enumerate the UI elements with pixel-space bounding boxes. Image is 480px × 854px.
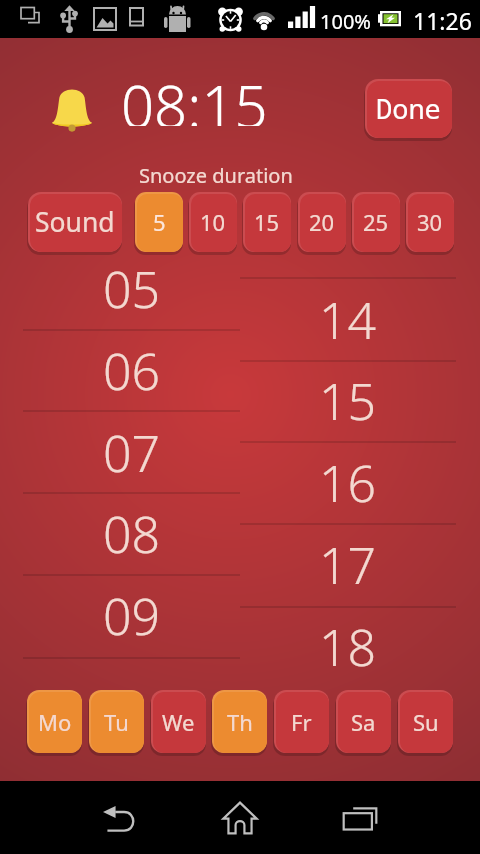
button[interactable]: 17 (240, 524, 456, 606)
staticText: Su (413, 707, 439, 737)
staticText: 5 (153, 207, 166, 237)
staticText: 15 (254, 207, 280, 237)
staticText: Mo (38, 707, 72, 737)
button[interactable]: 06 (23, 330, 240, 412)
staticText: 20 (309, 207, 335, 237)
staticText: Sa (351, 707, 376, 737)
button[interactable]: 07 (23, 412, 240, 494)
button[interactable]: 30 (406, 192, 454, 252)
staticText: Done (376, 90, 441, 127)
button[interactable]: 16 (240, 442, 456, 524)
button[interactable]: 09 (23, 575, 240, 657)
button[interactable]: Su (398, 690, 453, 753)
staticText: 11:26 (413, 5, 472, 36)
staticText: 18 (319, 613, 377, 681)
button[interactable]: 15 (240, 360, 456, 442)
button[interactable]: Fr (274, 690, 329, 753)
button[interactable]: Alarm enabled (51, 86, 93, 132)
staticText: 25 (363, 207, 389, 237)
staticText: 06 (103, 337, 161, 405)
button[interactable]: Recent apps (300, 781, 420, 854)
staticText: 100% (320, 8, 371, 35)
staticText: 05 (103, 255, 161, 323)
button[interactable]: 05 (23, 248, 240, 330)
staticText: 08 (103, 500, 161, 568)
staticText: 17 (319, 531, 377, 599)
button[interactable]: Mo (27, 690, 82, 753)
staticText: Tu (104, 707, 129, 737)
staticText: 09 (103, 582, 161, 650)
staticText: 08:15 (121, 66, 268, 126)
button[interactable]: Th (212, 690, 267, 753)
staticText: Fr (291, 707, 312, 737)
button[interactable]: Sa (336, 690, 391, 753)
button[interactable]: 5 (135, 192, 183, 252)
button[interactable]: 08 (23, 493, 240, 575)
staticText: 07 (103, 419, 161, 487)
button[interactable]: We (151, 690, 206, 753)
button[interactable]: 15 (243, 192, 291, 252)
button[interactable]: Tu (89, 690, 144, 753)
button[interactable]: 14 (240, 279, 456, 361)
button[interactable]: 20 (298, 192, 346, 252)
button[interactable]: 10 (189, 192, 237, 252)
button[interactable]: 25 (352, 192, 400, 252)
button[interactable]: Back (60, 781, 180, 854)
staticText: 14 (319, 286, 377, 354)
button[interactable]: Home (180, 781, 300, 854)
staticText: 16 (319, 449, 377, 517)
staticText: Sound (35, 204, 115, 240)
button[interactable]: 18 (240, 606, 456, 688)
staticText: 30 (417, 207, 443, 237)
staticText: 15 (319, 367, 377, 435)
staticText: We (162, 707, 195, 737)
button[interactable]: Sound (28, 192, 122, 252)
button[interactable]: Done (365, 79, 452, 138)
staticText: Th (227, 707, 253, 737)
staticText: Snooze duration (139, 162, 293, 189)
staticText: 10 (200, 207, 226, 237)
